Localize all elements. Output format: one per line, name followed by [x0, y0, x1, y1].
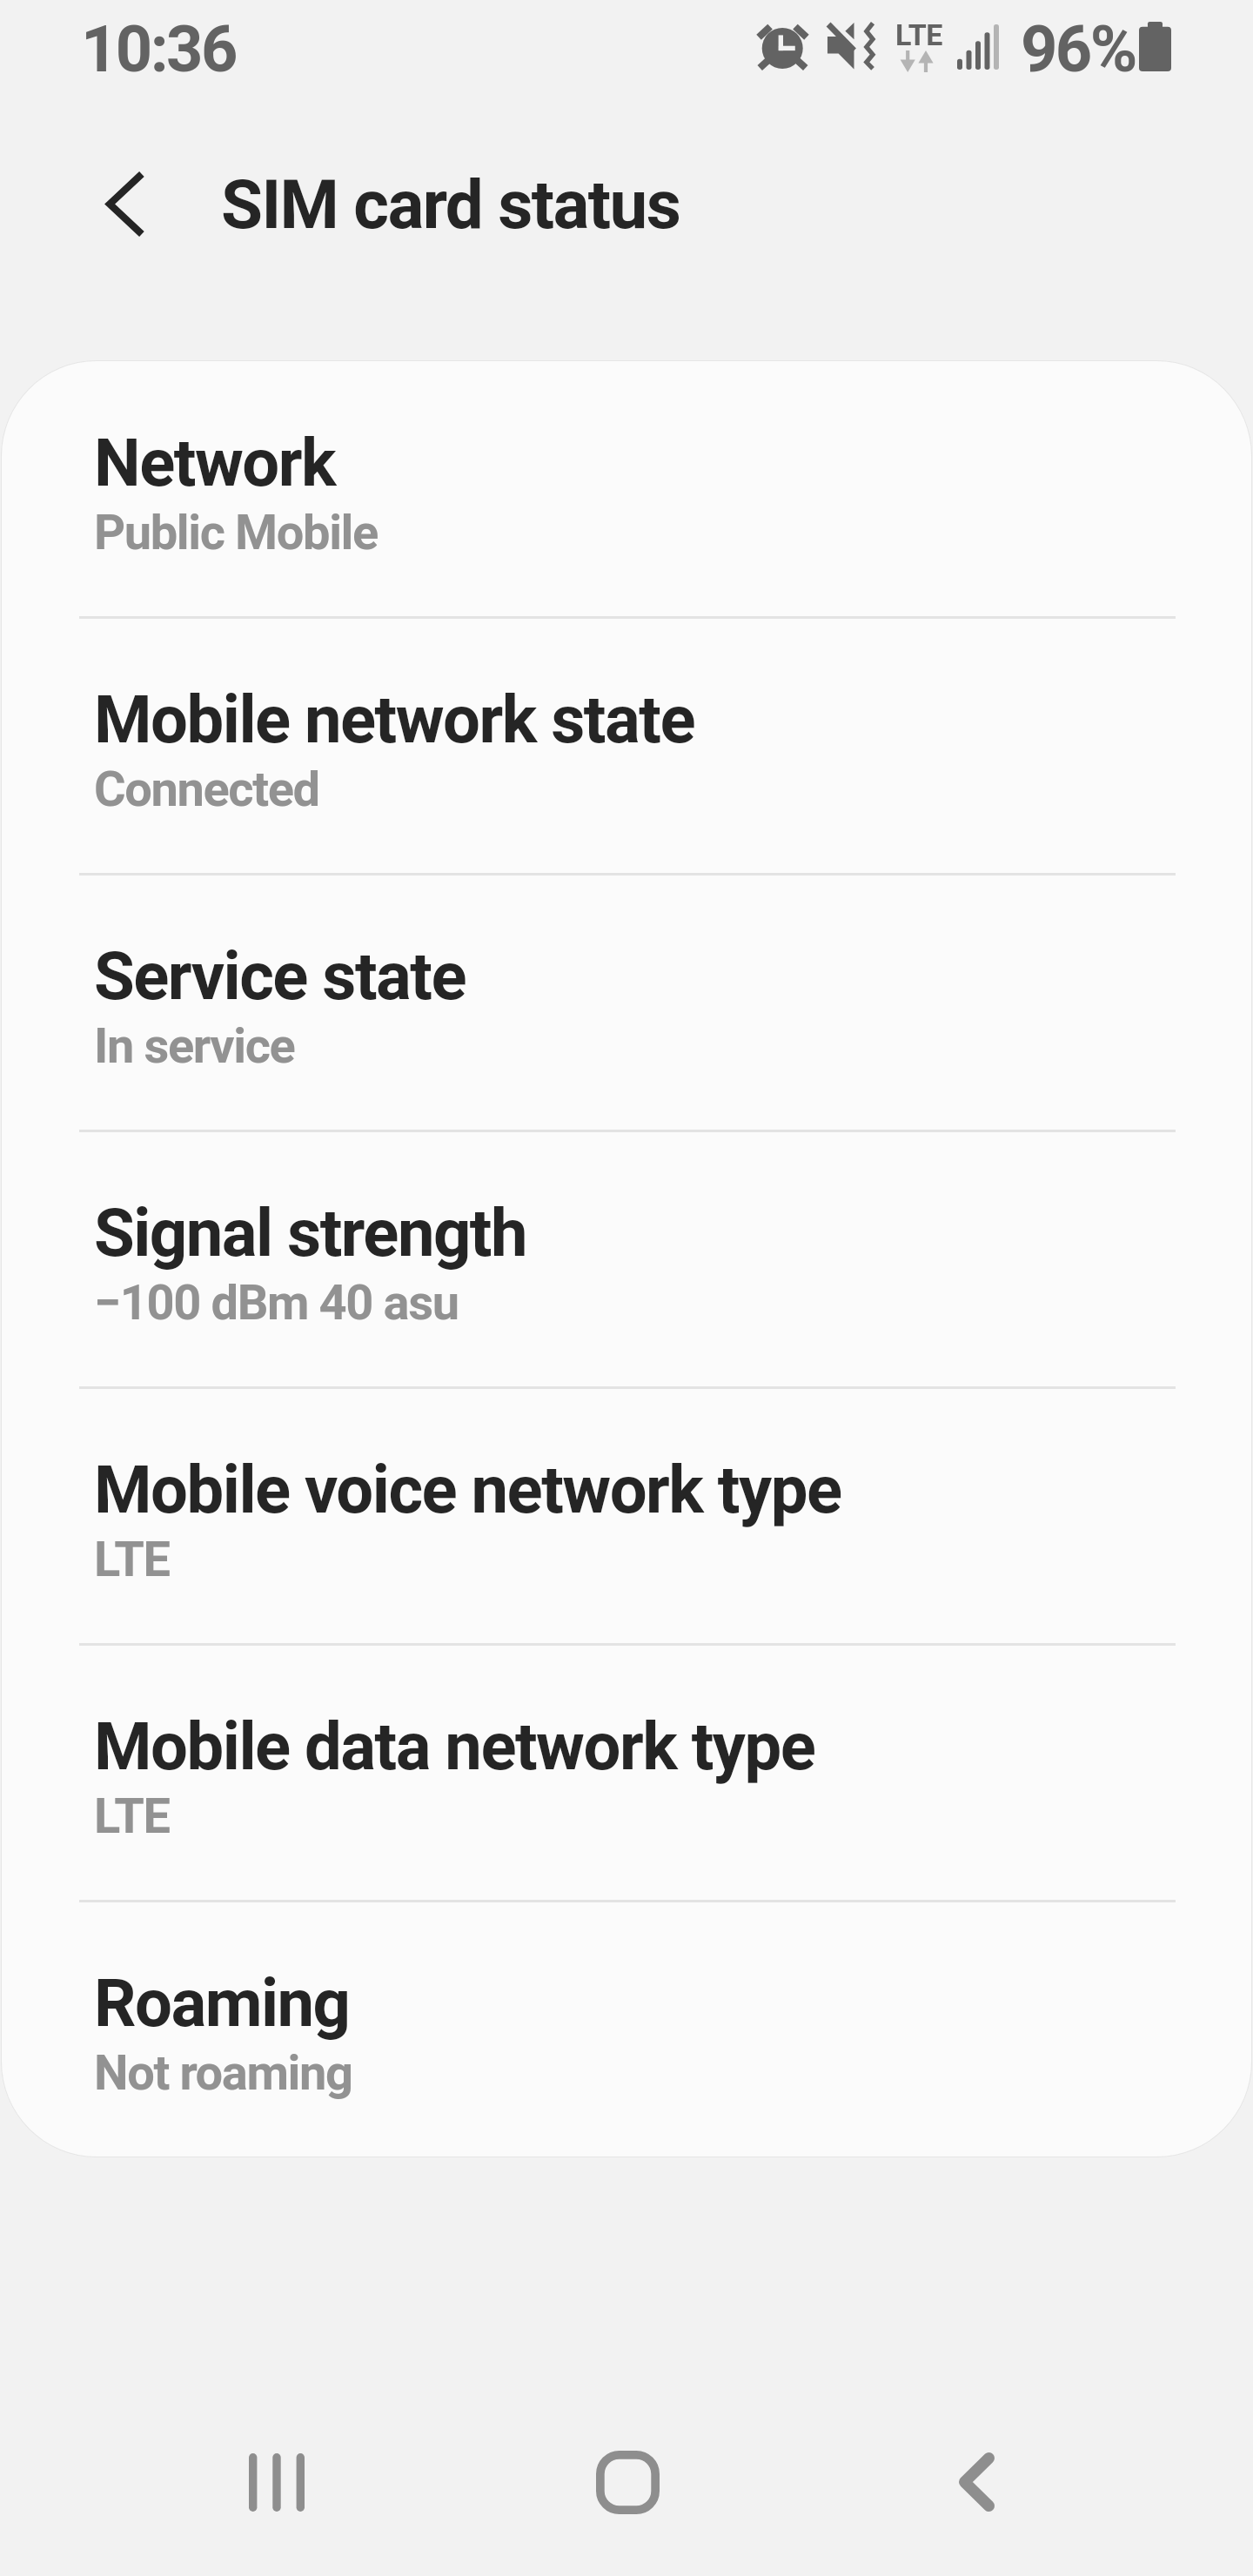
- staticText: Connected: [94, 761, 319, 818]
- staticText: Signal strength: [94, 1194, 527, 1271]
- staticText: LTE: [94, 1531, 170, 1588]
- staticText: Network: [94, 424, 335, 501]
- staticText: Mobile voice network type: [94, 1451, 841, 1528]
- staticText: 10:36: [81, 11, 236, 87]
- staticText: SIM card status: [221, 165, 680, 245]
- button[interactable]: Network: [2, 361, 1251, 618]
- staticText: Not roaming: [94, 2044, 352, 2102]
- button[interactable]: Service state: [2, 875, 1251, 1131]
- staticText: LTE: [895, 17, 943, 52]
- staticText: Roaming: [94, 1964, 350, 2042]
- staticText: LTE: [94, 1788, 170, 1845]
- button[interactable]: Roaming: [2, 1902, 1251, 2157]
- staticText: Service state: [94, 937, 466, 1015]
- staticText: 96%: [1021, 11, 1136, 87]
- button[interactable]: Mobile network state: [2, 618, 1251, 875]
- staticText: Public Mobile: [94, 504, 378, 561]
- button[interactable]: Navigate up: [63, 141, 188, 266]
- button[interactable]: Back: [872, 2421, 1081, 2543]
- button[interactable]: Recent apps: [172, 2421, 381, 2543]
- button[interactable]: Home: [523, 2421, 732, 2543]
- staticText: Mobile network state: [94, 681, 694, 758]
- staticText: Mobile data network type: [94, 1707, 815, 1785]
- button[interactable]: Signal strength: [2, 1131, 1251, 1388]
- staticText: −100 dBm 40 asu: [94, 1274, 459, 1332]
- button[interactable]: Mobile voice network type: [2, 1388, 1251, 1645]
- button[interactable]: Mobile data network type: [2, 1645, 1251, 1902]
- staticText: In service: [94, 1017, 295, 1075]
